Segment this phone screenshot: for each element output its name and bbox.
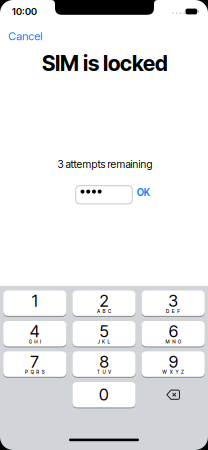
staticText: M (166, 339, 170, 345)
staticText: 0 (99, 384, 109, 404)
button[interactable]: 9 (141, 351, 205, 377)
staticText: K (102, 339, 105, 345)
staticText: E (172, 308, 175, 314)
staticText: I (40, 339, 41, 345)
staticText: W (162, 369, 167, 375)
staticText: 1 (32, 291, 38, 311)
button[interactable]: 5 (72, 321, 136, 346)
staticText: Z (181, 369, 184, 375)
button[interactable]: 0 (72, 382, 136, 407)
button[interactable]: 7 (3, 351, 66, 377)
staticText: P (25, 369, 28, 375)
staticText: D (166, 308, 169, 314)
staticText: 5 (99, 321, 108, 341)
staticText: 8 (99, 352, 108, 372)
staticText: Q (31, 369, 34, 375)
staticText: 9 (169, 352, 178, 372)
button[interactable]: 8 (72, 351, 136, 377)
button[interactable]: 2 (72, 290, 136, 316)
staticText: 3 attempts remaining (57, 158, 152, 170)
staticText: 7 (30, 352, 39, 372)
button[interactable]: Delete (141, 382, 205, 407)
button[interactable]: 3 (141, 290, 205, 316)
staticText: 4 (30, 321, 40, 341)
button[interactable]: 1 (3, 290, 66, 316)
staticText: R (36, 369, 39, 375)
staticText: V (108, 369, 111, 375)
staticText: 3 (168, 291, 178, 311)
staticText: H (34, 339, 37, 345)
staticText: OK (137, 187, 150, 198)
staticText: G (29, 339, 32, 345)
staticText: Cancel (8, 29, 42, 43)
staticText: 2 (99, 291, 108, 311)
button[interactable]: OK (137, 187, 150, 198)
staticText: S (42, 369, 45, 375)
button[interactable]: 4 (3, 321, 66, 346)
staticText: 10:00 (12, 6, 37, 17)
staticText: B (102, 308, 105, 314)
staticText: T (97, 369, 100, 375)
staticText: U (102, 369, 105, 375)
button[interactable]: Cancel (8, 29, 42, 43)
staticText: X (170, 369, 173, 375)
staticText: L (108, 339, 111, 345)
staticText: A (97, 308, 100, 314)
staticText: J (97, 339, 99, 345)
staticText: O (178, 339, 181, 345)
staticText: N (172, 339, 175, 345)
staticText: C (108, 308, 111, 314)
staticText: Y (175, 369, 178, 375)
button[interactable]: 6 (141, 321, 205, 346)
staticText: SIM is locked (42, 50, 168, 76)
staticText: F (177, 308, 180, 314)
staticText: 6 (169, 321, 178, 341)
